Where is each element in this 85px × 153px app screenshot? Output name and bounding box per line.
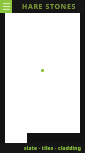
button[interactable]: slate · tiles · cladding bbox=[0, 143, 85, 153]
staticText: HARE STONES bbox=[22, 2, 76, 12]
button[interactable]: Open menu bbox=[0, 0, 12, 13]
staticText: slate · tiles · cladding bbox=[24, 145, 81, 152]
